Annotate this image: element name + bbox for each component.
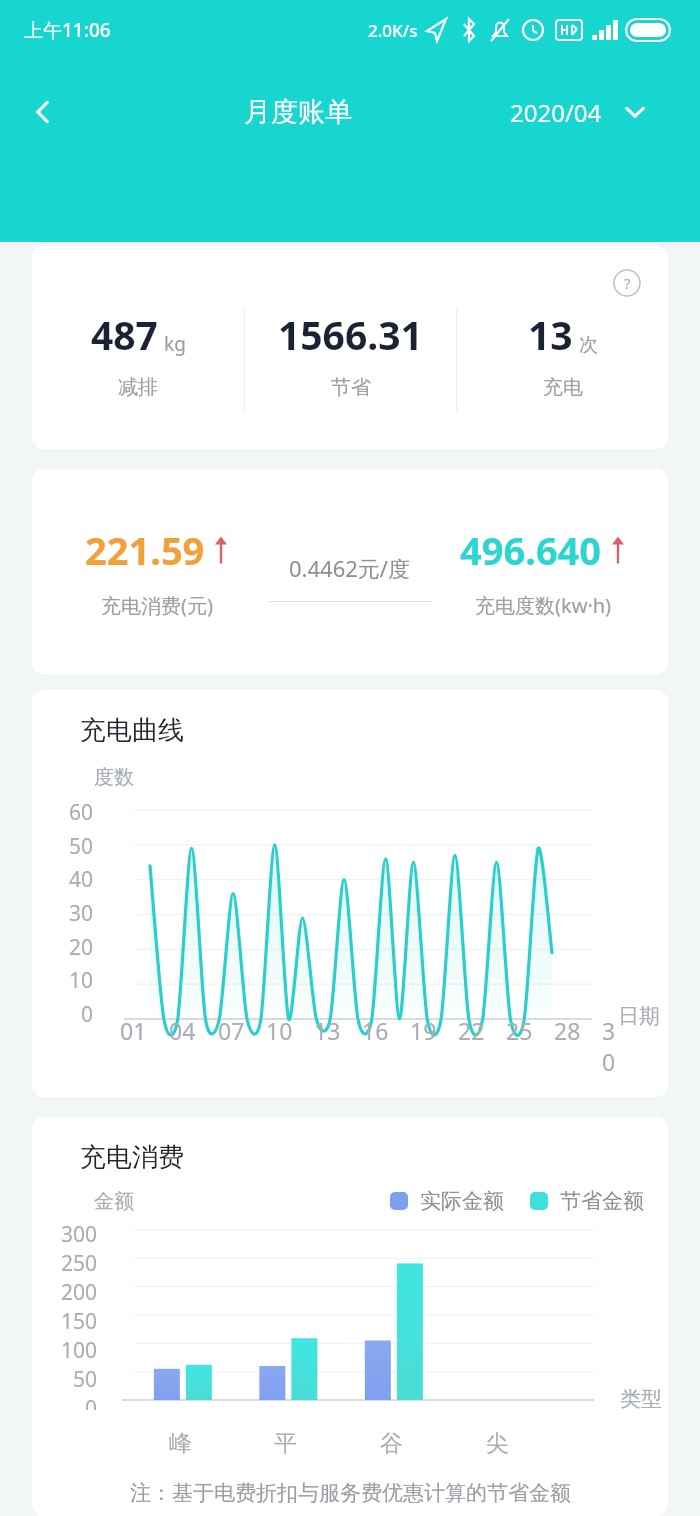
staticText: 金额 [94,1189,134,1214]
staticText: 100 [61,1336,98,1365]
button[interactable]: 13 [457,308,668,400]
staticText: 减排 [118,375,158,400]
staticText: 2.0K/s [368,19,418,42]
staticText: 250 [61,1249,98,1278]
staticText: 22 [458,1015,506,1046]
staticText: 10 [69,966,94,995]
button[interactable]: 487 [32,308,244,400]
staticText: 节省金额 [560,1188,644,1214]
staticText: 25 [506,1015,554,1046]
staticText: 0.4462元/度 [289,553,411,583]
staticText: 13 [528,308,573,361]
staticText: 200 [61,1278,98,1307]
staticText: 28 [554,1015,602,1046]
button[interactable]: 496.640 [436,524,650,619]
staticText: 150 [61,1307,98,1336]
staticText: 次 [579,333,598,357]
staticText: 实际金额 [420,1188,504,1214]
staticText: 01 [120,1015,169,1046]
staticText: 10 [266,1015,314,1046]
staticText: 1566.31 [278,308,423,361]
staticText: 上午11:06 [24,17,111,43]
button[interactable]: 1566.31 [245,308,456,400]
staticText: 60 [69,798,94,827]
staticText: 04 [169,1015,218,1046]
staticText: ? [624,273,631,293]
button[interactable]: 2020/04 [510,62,700,162]
staticText: 节省 [331,375,371,400]
button[interactable]: 221.59 [50,524,264,619]
staticText: 注：基于电费折扣与服务费优惠计算的节省金额 [130,1480,571,1506]
staticText: 充电消费(元) [101,592,213,619]
staticText: 谷 [380,1429,403,1458]
staticText: 峰 [169,1429,192,1458]
staticText: 16 [362,1015,410,1046]
staticText: 221.59 [85,524,205,576]
staticText: 19 [410,1015,458,1046]
staticText: 2020/04 [510,96,602,129]
staticText: 充电消费 [80,1141,184,1174]
staticText: 30 [602,1015,628,1077]
staticText: 13 [314,1015,362,1046]
staticText: 0 [81,1000,94,1029]
button[interactable]: Help [612,268,642,298]
staticText: 平 [274,1429,297,1458]
staticText: 充电度数(kw·h) [475,592,612,619]
staticText: 0 [85,1394,98,1410]
staticText: 类型 [620,1386,662,1412]
staticText: 20 [69,933,94,962]
staticText: 日期 [618,1003,660,1029]
staticText: 50 [73,1365,98,1394]
staticText: 尖 [486,1429,509,1458]
staticText: 40 [69,865,94,894]
staticText: 度数 [94,765,134,790]
staticText: 487 [91,308,158,361]
staticText: 07 [218,1015,266,1046]
staticText: 300 [61,1220,98,1249]
staticText: 充电 [543,375,583,400]
staticText: 月度账单 [244,95,352,129]
staticText: 充电曲线 [80,714,184,747]
staticText: 30 [69,899,94,928]
staticText: 50 [69,832,94,861]
button[interactable]: Back [0,62,86,162]
staticText: kg [164,331,186,357]
staticText: 496.640 [460,524,602,576]
